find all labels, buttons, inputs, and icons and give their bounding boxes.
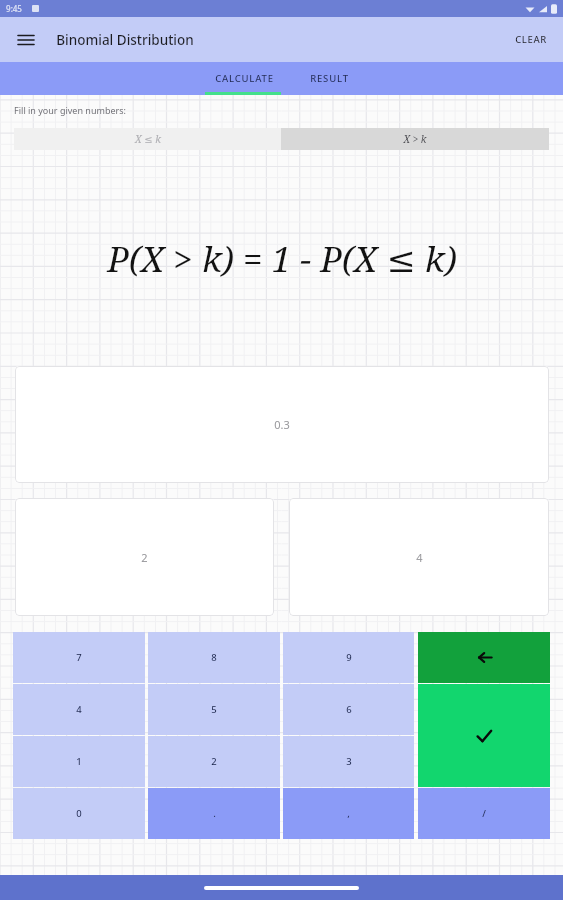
button[interactable]: 9 bbox=[283, 632, 414, 683]
button[interactable]: X ≤ k bbox=[14, 128, 281, 150]
staticText: 0.3 bbox=[274, 417, 290, 432]
button[interactable]: Open navigation menu bbox=[12, 26, 40, 54]
button[interactable]: 7 bbox=[13, 632, 145, 683]
staticText: Fill in your given numbers: bbox=[14, 104, 126, 116]
staticText: P(X > k) = 1 − P(X ≤ k) bbox=[107, 235, 457, 283]
staticText: 1 bbox=[76, 755, 82, 768]
button[interactable]: Confirm bbox=[418, 684, 550, 787]
staticText: 2 bbox=[211, 755, 217, 768]
staticText: 5 bbox=[211, 703, 217, 716]
button[interactable]: 0 bbox=[13, 788, 145, 839]
staticText: 8 bbox=[211, 651, 217, 664]
staticText: 9 bbox=[346, 651, 352, 664]
button[interactable]: 8 bbox=[148, 632, 280, 683]
staticText: 0 bbox=[76, 807, 82, 820]
button[interactable]: CALCULATE bbox=[201, 63, 288, 94]
button[interactable]: RESULT bbox=[296, 63, 363, 94]
staticText: 4 bbox=[76, 703, 82, 716]
staticText: 7 bbox=[76, 651, 82, 664]
staticText: 9:45 bbox=[6, 3, 22, 14]
staticText: 6 bbox=[346, 703, 352, 716]
button[interactable]: X > k bbox=[281, 128, 549, 150]
staticText: , bbox=[347, 807, 350, 820]
button[interactable]: 0.3 bbox=[15, 366, 549, 483]
button[interactable]: / bbox=[418, 788, 550, 839]
staticText: RESULT bbox=[310, 72, 349, 85]
staticText: CALCULATE bbox=[215, 72, 274, 85]
button[interactable]: 2 bbox=[148, 736, 280, 787]
staticText: X > k bbox=[403, 132, 427, 146]
staticText: 3 bbox=[346, 755, 352, 768]
staticText: 4 bbox=[416, 550, 423, 565]
staticText: . bbox=[213, 807, 216, 820]
staticText: 2 bbox=[141, 550, 148, 565]
button[interactable]: 5 bbox=[148, 684, 280, 735]
button[interactable]: 1 bbox=[13, 736, 145, 787]
button[interactable]: 6 bbox=[283, 684, 414, 735]
staticText: / bbox=[482, 807, 486, 820]
staticText: CLEAR bbox=[515, 33, 547, 46]
staticText: Binomial Distribution bbox=[56, 31, 194, 49]
button[interactable]: Backspace bbox=[418, 632, 550, 683]
button[interactable]: 3 bbox=[283, 736, 414, 787]
staticText: X ≤ k bbox=[135, 132, 161, 146]
button[interactable]: 4 bbox=[289, 498, 549, 616]
button[interactable]: 2 bbox=[15, 498, 274, 616]
button[interactable]: 4 bbox=[13, 684, 145, 735]
button[interactable]: CLEAR bbox=[507, 27, 555, 52]
